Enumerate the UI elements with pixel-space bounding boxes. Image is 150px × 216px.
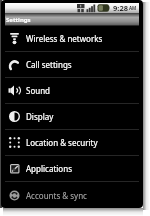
button[interactable]: Call settings xyxy=(5,52,139,77)
staticText: AM xyxy=(129,5,137,11)
button[interactable]: Wireless & networks xyxy=(5,26,139,51)
button[interactable]: Sound xyxy=(5,78,139,103)
button[interactable]: Display xyxy=(5,104,139,129)
staticText: Call settings xyxy=(26,59,72,70)
staticText: Location & security xyxy=(26,137,98,148)
staticText: Sound xyxy=(26,85,51,96)
staticText: Settings xyxy=(6,16,31,24)
staticText: Applications xyxy=(26,163,72,174)
button[interactable]: Accounts & sync xyxy=(5,184,139,204)
button[interactable]: Applications xyxy=(5,156,139,181)
staticText: 9:28 xyxy=(113,3,128,13)
staticText: Wireless & networks xyxy=(26,33,103,44)
button[interactable]: Location & security xyxy=(5,130,139,155)
staticText: Display xyxy=(26,111,54,122)
staticText: Accounts & sync xyxy=(26,190,87,201)
